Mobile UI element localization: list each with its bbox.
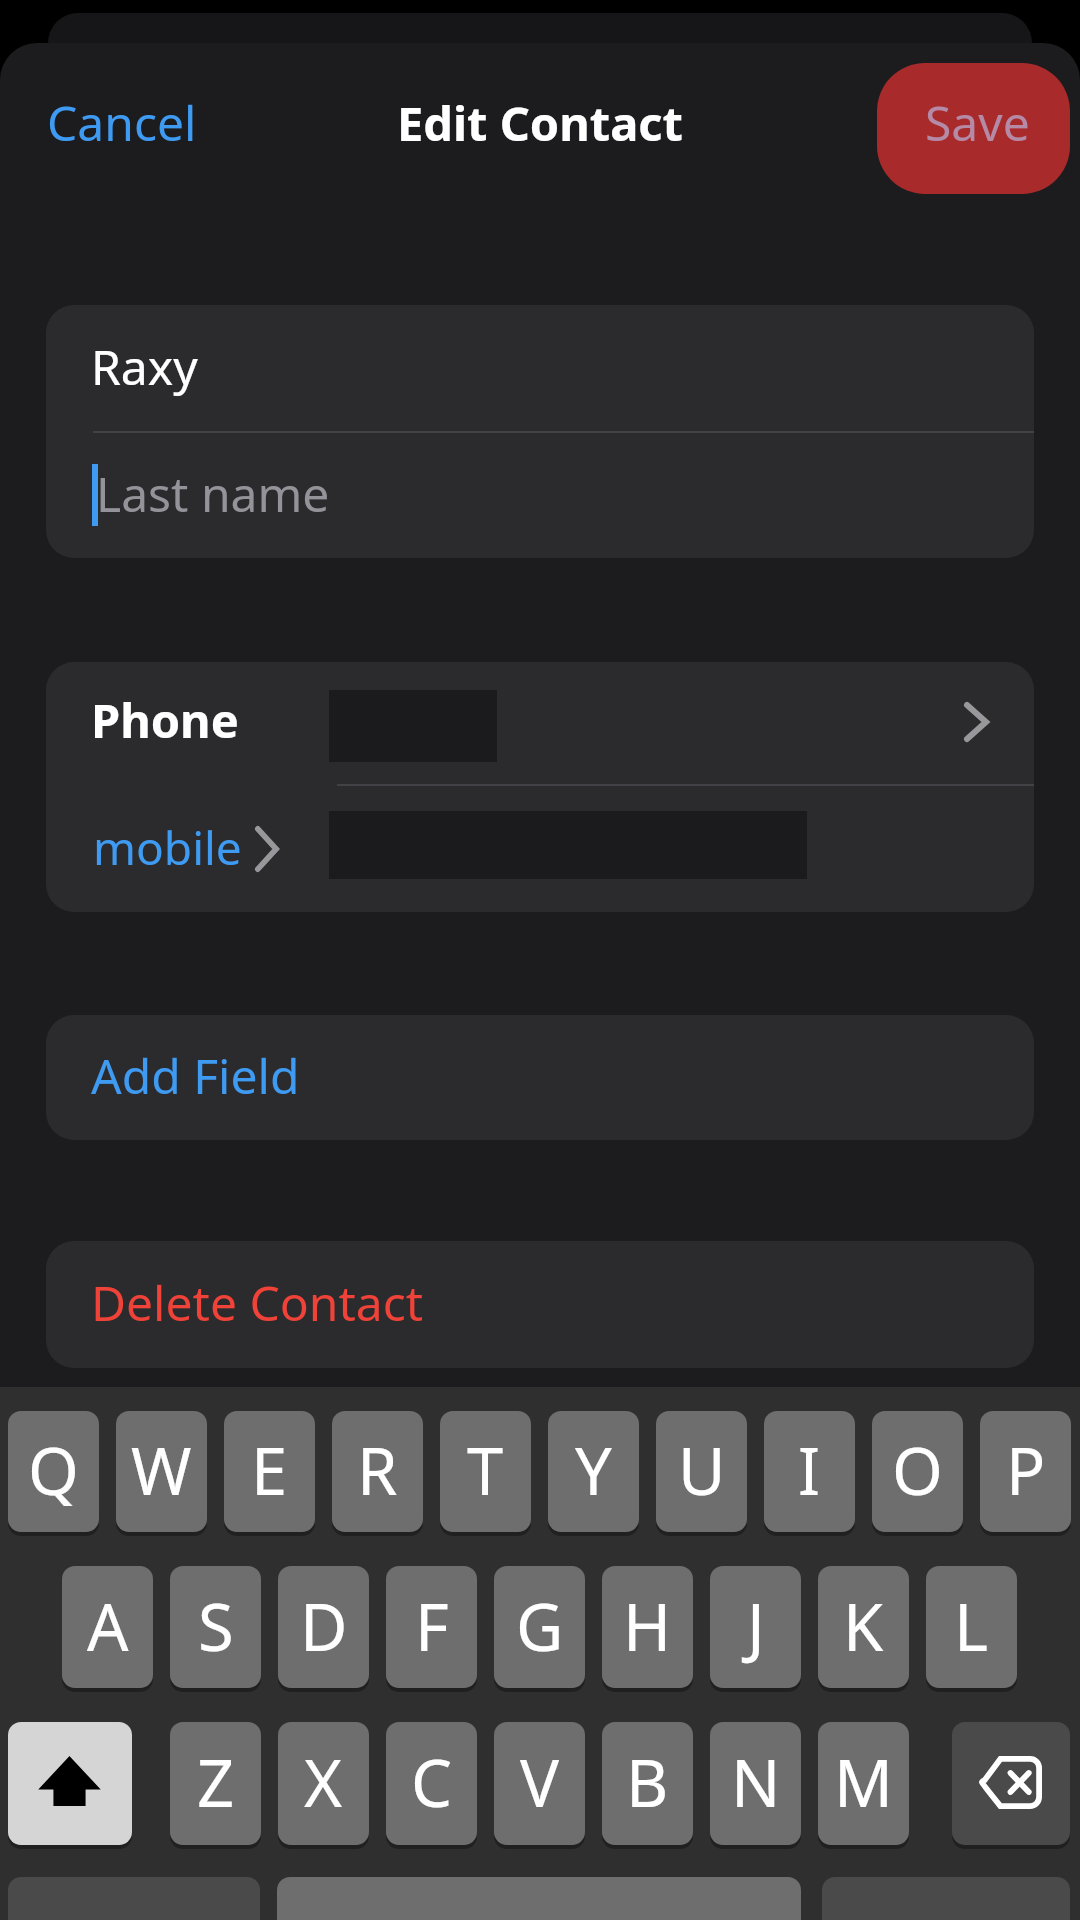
staticText: D <box>300 1582 348 1671</box>
button[interactable]: X <box>278 1722 369 1845</box>
staticText: V <box>520 1738 560 1827</box>
button[interactable]: Add Field <box>46 1015 1034 1140</box>
staticText: W <box>131 1426 192 1515</box>
staticText: Delete Contact <box>91 1270 424 1335</box>
staticText: Z <box>197 1738 235 1827</box>
button[interactable]: I <box>764 1411 855 1532</box>
button[interactable]: mobile <box>46 786 1034 912</box>
staticText: B <box>626 1738 669 1827</box>
button[interactable]: P <box>980 1411 1071 1532</box>
staticText: Add Field <box>91 1043 300 1108</box>
staticText: U <box>678 1426 726 1515</box>
staticText: F <box>415 1582 449 1671</box>
button[interactable]: U <box>656 1411 747 1532</box>
button[interactable]: M <box>818 1722 909 1845</box>
staticText: Phone <box>91 688 239 752</box>
staticText: R <box>357 1426 398 1515</box>
button[interactable]: Shift <box>8 1722 132 1845</box>
staticText: S <box>198 1582 234 1671</box>
staticText: M <box>834 1738 893 1827</box>
button[interactable]: F <box>386 1566 477 1688</box>
staticText: Edit Contact <box>397 91 683 155</box>
button[interactable]: H <box>602 1566 693 1688</box>
button[interactable]: G <box>494 1566 585 1688</box>
button[interactable]: B <box>602 1722 693 1845</box>
button[interactable]: C <box>386 1722 477 1845</box>
button[interactable]: W <box>116 1411 207 1532</box>
staticText: Last name <box>96 461 330 526</box>
button[interactable]: Raxy <box>46 305 1034 431</box>
staticText: A <box>87 1582 129 1671</box>
button[interactable]: Cancel <box>17 68 227 177</box>
button[interactable]: Phone <box>46 662 1034 784</box>
staticText: G <box>516 1582 564 1671</box>
button[interactable]: Backspace <box>952 1722 1070 1845</box>
button[interactable]: Z <box>170 1722 261 1845</box>
button[interactable]: T <box>440 1411 531 1532</box>
button[interactable]: Delete Contact <box>46 1241 1034 1368</box>
staticText: Save <box>925 90 1030 155</box>
button[interactable]: A <box>62 1566 153 1688</box>
button[interactable]: R <box>332 1411 423 1532</box>
staticText: I <box>798 1426 821 1515</box>
button[interactable]: J <box>710 1566 801 1688</box>
button[interactable]: E <box>224 1411 315 1532</box>
staticText: L <box>954 1582 989 1671</box>
button[interactable]: Save <box>877 63 1070 194</box>
button[interactable]: O <box>872 1411 963 1532</box>
button[interactable] <box>277 1877 801 1920</box>
staticText: K <box>843 1582 884 1671</box>
staticText: C <box>411 1738 453 1827</box>
staticText: Raxy <box>91 334 198 399</box>
button[interactable]: Q <box>8 1411 99 1532</box>
button[interactable]: L <box>926 1566 1017 1688</box>
staticText: P <box>1006 1426 1046 1515</box>
button[interactable]: S <box>170 1566 261 1688</box>
button[interactable]: V <box>494 1722 585 1845</box>
staticText: N <box>731 1738 781 1827</box>
staticText: Cancel <box>47 90 197 155</box>
button[interactable]: Last name <box>46 433 1034 558</box>
button[interactable]: N <box>710 1722 801 1845</box>
button[interactable]: Y <box>548 1411 639 1532</box>
staticText: Q <box>28 1426 79 1515</box>
staticText: mobile <box>93 816 242 879</box>
button[interactable]: K <box>818 1566 909 1688</box>
staticText: E <box>251 1426 288 1515</box>
staticText: T <box>467 1426 504 1515</box>
staticText: J <box>747 1582 765 1671</box>
staticText: Y <box>575 1426 612 1515</box>
button[interactable]: D <box>278 1566 369 1688</box>
staticText: O <box>892 1426 943 1515</box>
staticText: X <box>304 1738 343 1827</box>
staticText: H <box>623 1582 672 1671</box>
